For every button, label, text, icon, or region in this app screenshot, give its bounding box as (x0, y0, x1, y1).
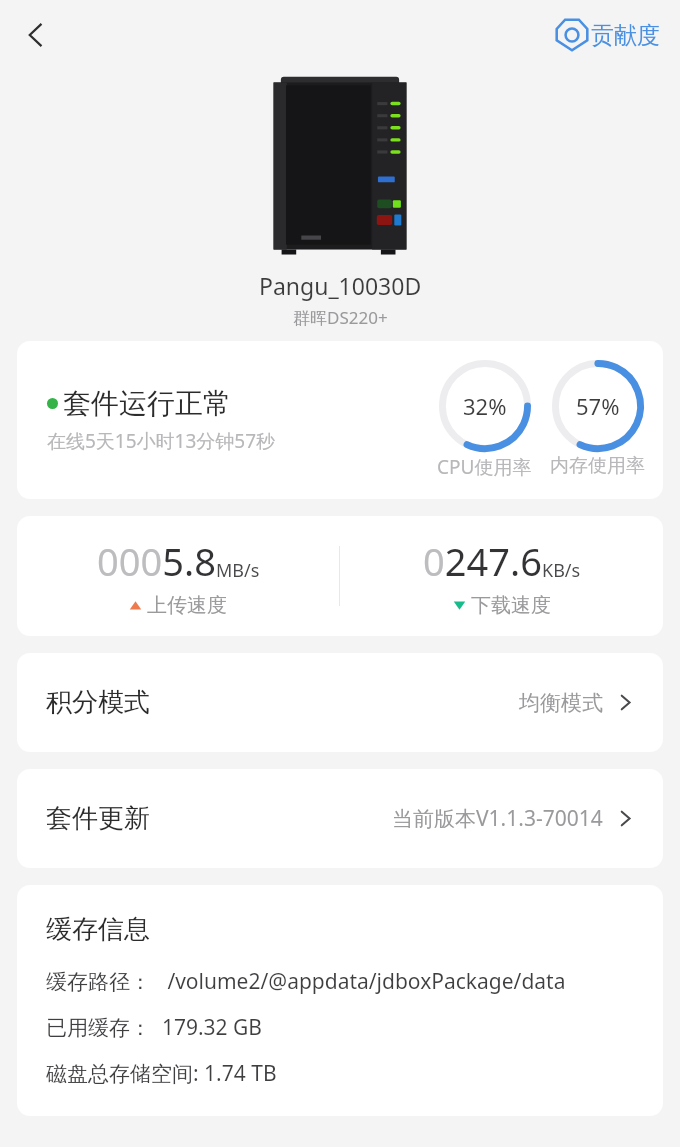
staticText: 上传速度 (147, 593, 227, 618)
staticText: 当前版本V1.1.3-70014 (392, 804, 603, 833)
staticText: 32% (463, 391, 507, 421)
staticText: 积分模式 (46, 686, 150, 719)
staticText: 已用缓存： 179.32 GB (46, 1013, 263, 1042)
staticText: 在线5天15小时13分钟57秒 (47, 428, 276, 454)
staticText: CPU使用率 (437, 454, 532, 480)
staticText: 0005.8 (97, 535, 216, 587)
staticText: 缓存信息 (46, 913, 150, 946)
staticText: KB/s (542, 558, 581, 583)
staticText: 均衡模式 (519, 690, 603, 716)
staticText: 套件更新 (46, 802, 150, 835)
button[interactable]: 套件更新 (17, 769, 663, 868)
button[interactable]: 积分模式 (17, 653, 663, 752)
staticText: 0247.6 (423, 535, 542, 587)
staticText: MB/s (216, 558, 260, 583)
staticText: 贡献度 (591, 21, 660, 50)
staticText: 下载速度 (471, 593, 551, 618)
staticText: 套件运行正常 (63, 386, 231, 421)
button[interactable]: Back (8, 7, 64, 63)
button[interactable]: 贡献度 (551, 12, 664, 58)
staticText: 缓存路径： /volume2/@appdata/jdboxPackage/dat… (46, 967, 566, 996)
staticText: 磁盘总存储空间: 1.74 TB (46, 1059, 277, 1088)
staticText: 内存使用率 (550, 454, 645, 478)
staticText: Pangu_10030D (259, 270, 422, 301)
staticText: 57% (576, 391, 620, 421)
staticText: 群晖DS220+ (293, 306, 388, 329)
